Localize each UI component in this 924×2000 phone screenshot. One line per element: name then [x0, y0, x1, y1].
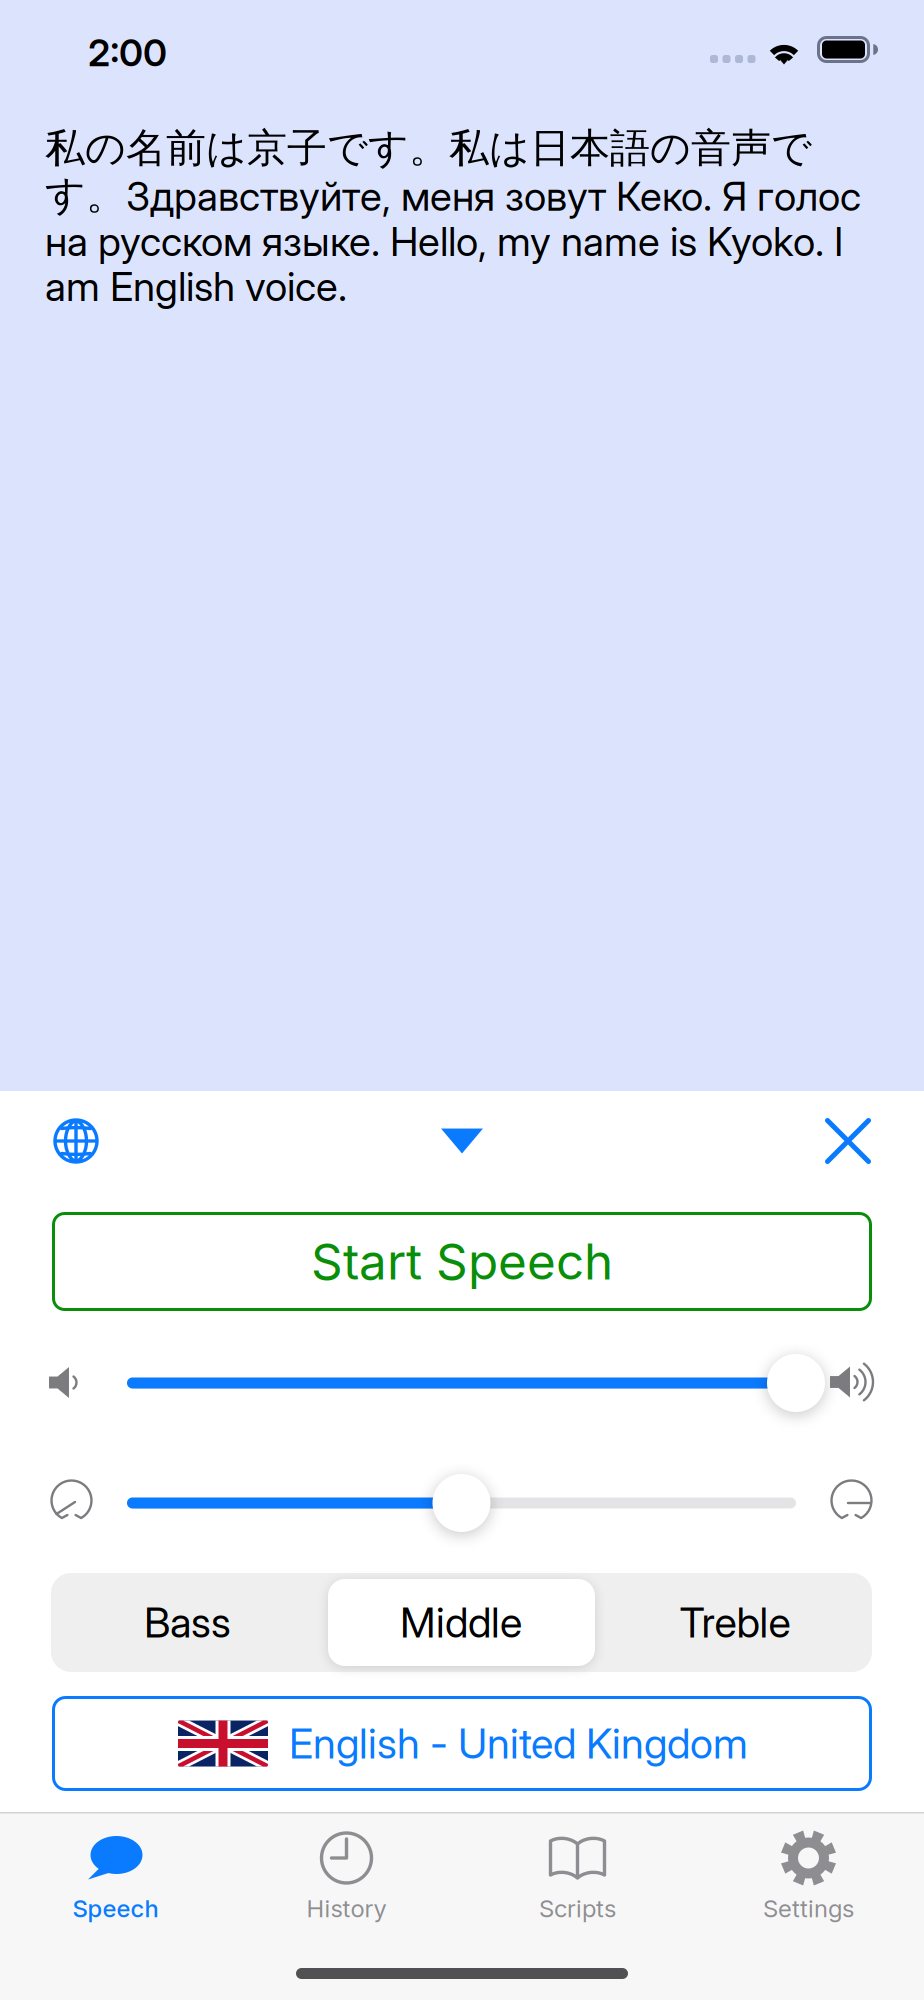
button[interactable]: Scripts — [462, 1820, 693, 1948]
staticText: History — [306, 1894, 386, 1923]
button[interactable]: Treble — [598, 1573, 872, 1672]
staticText: Treble — [679, 1597, 790, 1647]
button[interactable]: Language — [30, 1095, 122, 1187]
button[interactable]: Close — [802, 1095, 894, 1187]
staticText: Start Speech — [311, 1232, 613, 1291]
button[interactable]: Start Speech — [52, 1212, 872, 1311]
staticText: Scripts — [539, 1894, 616, 1923]
staticText: English - United Kingdom — [289, 1718, 748, 1768]
staticText: 2:00 — [88, 30, 167, 75]
button[interactable]: Bass — [51, 1573, 324, 1672]
staticText: Middle — [400, 1597, 522, 1647]
staticText: Speech — [72, 1894, 158, 1923]
button[interactable]: History — [231, 1820, 462, 1948]
button[interactable]: Collapse panel — [416, 1095, 508, 1187]
staticText: Bass — [144, 1597, 231, 1647]
button[interactable]: Speech — [0, 1820, 231, 1948]
staticText: 私の名前は京子です。私は日本語の音声です。Здравствуйте, меня … — [45, 123, 861, 311]
button[interactable]: English - United Kingdom — [52, 1696, 872, 1791]
button[interactable]: Middle — [324, 1573, 598, 1672]
staticText: Settings — [763, 1894, 854, 1923]
button[interactable]: Settings — [693, 1820, 924, 1948]
